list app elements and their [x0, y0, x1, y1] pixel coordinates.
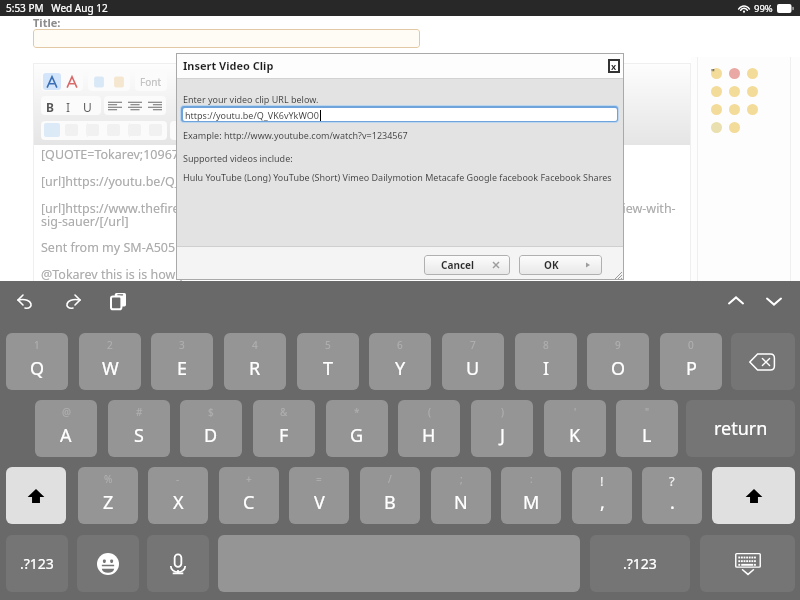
staticText: Supported videos include: — [183, 152, 293, 164]
button[interactable]: Next — [762, 289, 786, 313]
button[interactable]: Emoji — [746, 67, 759, 80]
button[interactable]: @ — [35, 400, 97, 457]
staticText: R — [249, 356, 261, 381]
button[interactable]: * — [326, 400, 388, 457]
button[interactable]: 1 — [6, 333, 68, 390]
button[interactable]: Redo — [60, 289, 84, 313]
staticText: 6 — [397, 338, 403, 352]
staticText: , — [600, 490, 605, 515]
button[interactable]: = — [289, 467, 349, 524]
staticText: I — [543, 356, 550, 381]
button[interactable]: Emoji — [746, 85, 759, 98]
button[interactable]: Emoji — [728, 103, 741, 116]
button[interactable]: 8 — [515, 333, 577, 390]
button[interactable]: 2 — [79, 333, 141, 390]
staticText: D — [204, 423, 218, 448]
button[interactable]: ' — [544, 400, 606, 457]
button[interactable]: Close — [608, 59, 620, 73]
button[interactable]: .?123 — [6, 535, 68, 592]
button[interactable]: / — [360, 467, 420, 524]
staticText: V — [314, 490, 325, 515]
button[interactable]: ; — [431, 467, 491, 524]
staticText: % — [104, 472, 113, 486]
button[interactable]: kbd — [700, 535, 795, 592]
button[interactable]: Emoji — [746, 103, 759, 116]
button[interactable]: Cancel — [424, 255, 510, 275]
staticText: @Tokarev this is is how you embed a vide… — [41, 266, 291, 283]
button[interactable]: 6 — [369, 333, 431, 390]
button[interactable]: 9 — [587, 333, 649, 390]
button[interactable] — [731, 333, 795, 390]
staticText: ; — [460, 472, 463, 486]
button[interactable]: Emoji — [710, 67, 723, 80]
button[interactable]: Emoji — [710, 85, 723, 98]
button[interactable]: - — [148, 467, 208, 524]
button[interactable]: B — [41, 96, 101, 115]
button[interactable]: Emoji — [710, 103, 723, 116]
button[interactable] — [41, 72, 83, 91]
button[interactable]: mic — [147, 535, 209, 592]
button[interactable]: Font — [135, 72, 167, 91]
staticText: .?123 — [20, 554, 54, 573]
staticText: [url]https://youtu.be/Q_VK6vYkWO0[/url] — [41, 173, 281, 190]
button[interactable]: Emoji — [728, 67, 741, 80]
staticText: = — [316, 472, 322, 486]
staticText: M — [523, 490, 540, 515]
staticText: Hulu YouTube (Long) YouTube (Short) Vime… — [183, 171, 612, 183]
button[interactable]: 4 — [224, 333, 286, 390]
button[interactable]: OK — [519, 255, 602, 275]
staticText: " — [711, 66, 715, 77]
button[interactable]: .?123 — [590, 535, 690, 592]
button[interactable] — [6, 467, 66, 524]
button[interactable]: 0 — [660, 333, 722, 390]
staticText: return — [714, 416, 768, 441]
button[interactable]: 7 — [442, 333, 504, 390]
staticText: [url]https://www.thefirearmblog.com/blog… — [41, 200, 676, 217]
button[interactable]: https://youtu.be/Q_VK6vYkWO0 — [183, 108, 617, 121]
button[interactable]: Emoji — [728, 85, 741, 98]
button[interactable]: Previous — [724, 289, 748, 313]
button[interactable] — [170, 121, 198, 140]
staticText: # — [136, 405, 143, 419]
staticText: sig-sauer/[/url] — [41, 213, 129, 230]
button[interactable]: : — [501, 467, 561, 524]
button[interactable]: " — [616, 400, 678, 457]
staticText: Sent from my SM-A505U using Tapatalk[/QU… — [41, 239, 328, 256]
staticText: C — [243, 490, 255, 515]
staticText: T — [323, 356, 334, 381]
button[interactable]: emoji — [77, 535, 139, 592]
button[interactable]: + — [219, 467, 279, 524]
button[interactable]: Paste — [106, 289, 130, 313]
staticText: Q — [30, 356, 45, 381]
button[interactable]: ? — [642, 467, 702, 524]
button[interactable]: # — [108, 400, 170, 457]
staticText: [QUOTE=Tokarev;1096789] — [41, 146, 198, 163]
staticText: L — [642, 423, 652, 448]
button[interactable]: 5 — [297, 333, 359, 390]
staticText: Enter your video clip URL below. — [183, 93, 319, 105]
button[interactable] — [104, 96, 166, 115]
button[interactable] — [88, 72, 130, 91]
staticText: ' — [574, 405, 577, 419]
button[interactable]: 3 — [151, 333, 213, 390]
staticText: 5 — [325, 338, 331, 352]
button[interactable]: $ — [180, 400, 242, 457]
button[interactable]: ) — [471, 400, 533, 457]
button[interactable]: & — [253, 400, 315, 457]
staticText: Example: http://www.youtube.com/watch?v=… — [183, 129, 408, 141]
button[interactable]: % — [78, 467, 138, 524]
staticText: " — [645, 405, 650, 419]
button[interactable]: Emoji — [710, 121, 723, 134]
button[interactable] — [33, 29, 420, 48]
staticText: * — [354, 405, 360, 419]
button[interactable]: ! — [572, 467, 632, 524]
button[interactable] — [41, 121, 167, 140]
staticText: 1 — [34, 338, 40, 352]
button[interactable]: ( — [398, 400, 460, 457]
button[interactable]: return — [686, 400, 795, 457]
button[interactable] — [712, 467, 795, 524]
button[interactable]: Emoji — [728, 121, 741, 134]
button[interactable]: Undo — [14, 289, 38, 313]
staticText: Cancel — [441, 258, 475, 272]
